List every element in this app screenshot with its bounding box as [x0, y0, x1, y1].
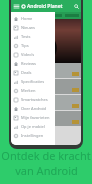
button[interactable]: Deals: [11, 68, 55, 77]
button[interactable]: Open navigation menu: [11, 1, 21, 11]
button[interactable]: Tips: [11, 41, 55, 50]
staticText: Smartwatches: [21, 97, 48, 102]
button[interactable]: [11, 79, 81, 94]
button[interactable]: Search: [71, 1, 81, 11]
button[interactable]: Merken: [11, 86, 55, 95]
button[interactable]: [11, 111, 81, 126]
staticText: Reviews: [21, 61, 36, 66]
button[interactable]: Tests: [11, 32, 55, 41]
staticText: Instellingen: [21, 133, 44, 138]
staticText: Over Android: [21, 106, 47, 111]
button[interactable]: Smartwatches: [11, 95, 55, 104]
staticText: Deals: [21, 70, 32, 75]
button[interactable]: Mijn favorieten: [11, 113, 55, 122]
staticText: Specificaties: [21, 79, 45, 84]
staticText: van Android: [15, 163, 78, 178]
button[interactable]: Nieuws: [11, 23, 55, 32]
staticText: Mijn favorieten: [21, 115, 50, 120]
button[interactable]: Instellingen: [11, 131, 55, 140]
button[interactable]: Over Android: [11, 104, 55, 113]
button[interactable]: [11, 63, 81, 78]
staticText: Nieuws: [21, 25, 35, 30]
button[interactable]: Reviews: [11, 59, 55, 68]
staticText: Home: [21, 16, 33, 21]
staticText: Video's: [21, 52, 35, 57]
button[interactable]: [11, 95, 81, 110]
staticText: Ontdek de kracht: [1, 148, 91, 163]
staticText: Merken: [21, 88, 36, 93]
staticText: Android Planet: [27, 3, 63, 10]
button[interactable]: Home: [11, 14, 55, 23]
staticText: Tests: [21, 34, 31, 39]
button[interactable]: Specificaties: [11, 77, 55, 86]
staticText: Op je mobiel: [21, 124, 45, 129]
button[interactable]: Video's: [11, 50, 55, 59]
staticText: Tips: [21, 43, 29, 48]
button[interactable]: Op je mobiel: [11, 122, 55, 131]
